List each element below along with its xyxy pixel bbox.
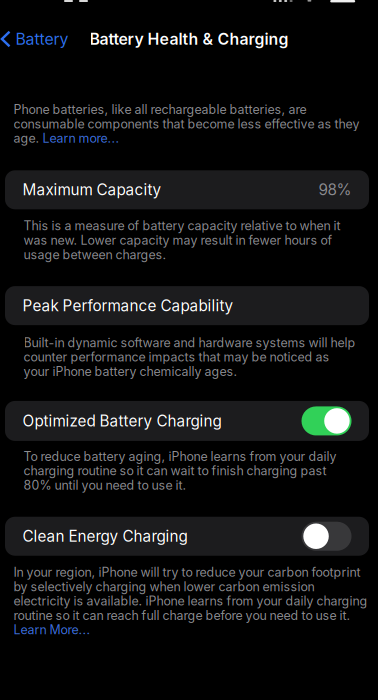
staticText: 80% until you need to use it.: [23, 478, 186, 493]
button[interactable]: Battery: [0, 22, 68, 56]
staticText: age.: [13, 131, 42, 146]
staticText: This is a measure of battery capacity re…: [23, 218, 340, 233]
button[interactable]: Peak Performance Capability: [0, 286, 369, 325]
staticText: charging routine so it can wait to finis…: [23, 463, 326, 478]
staticText: Built-in dynamic software and hardware s…: [23, 335, 355, 350]
staticText: by selectively charging when lower carbo…: [13, 579, 314, 594]
staticText: counter performance impacts that may be …: [23, 349, 329, 364]
button[interactable]: Clean Energy Charging: [0, 517, 369, 556]
staticText: Maximum Capacity: [22, 181, 161, 199]
staticText: In your region, iPhone will try to reduc…: [13, 565, 360, 580]
staticText: To reduce battery aging, iPhone learns f…: [23, 449, 336, 464]
staticText: Peak Performance Capability: [22, 296, 233, 315]
staticText: electricity is available. iPhone learns …: [13, 593, 367, 608]
staticText: was new. Lower capacity may result in fe…: [23, 233, 332, 248]
staticText: routine so it can reach full charge befo…: [13, 608, 350, 623]
button[interactable]: Learn More...: [13, 622, 90, 637]
staticText: Optimized Battery Charging: [22, 412, 221, 430]
button[interactable]: Maximum Capacity: [0, 170, 369, 209]
staticText: usage between charges.: [23, 247, 166, 262]
staticText: consumable components that become less e…: [13, 116, 359, 131]
staticText: Battery Health & Charging: [89, 29, 288, 49]
staticText: Clean Energy Charging: [22, 527, 187, 545]
staticText: Battery: [15, 29, 68, 49]
button[interactable]: Optimized Battery Charging: [0, 401, 369, 441]
staticText: your iPhone battery chemically ages.: [23, 364, 237, 379]
staticText: Phone batteries, like all rechargeable b…: [13, 102, 306, 117]
staticText: Learn More...: [13, 622, 90, 637]
button[interactable]: Learn more...: [42, 131, 119, 146]
staticText: 98%: [318, 181, 351, 199]
staticText: Learn more...: [42, 131, 119, 146]
